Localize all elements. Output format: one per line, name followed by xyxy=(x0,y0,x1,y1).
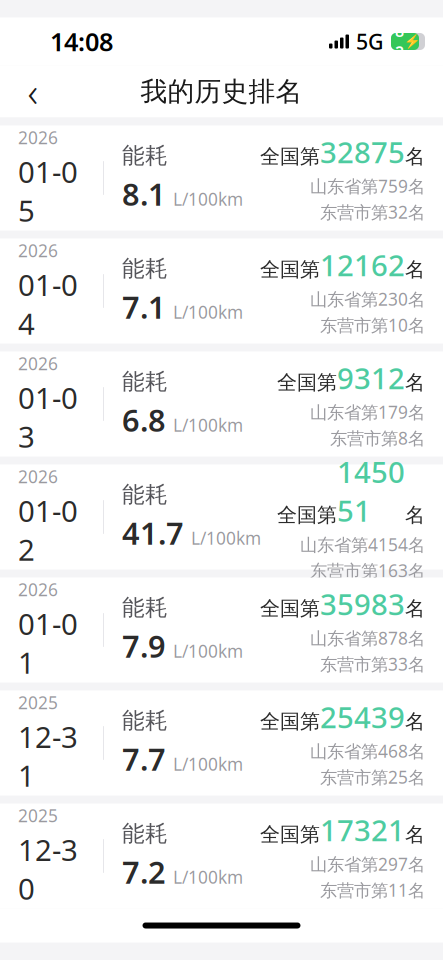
staticText: 01-04 xyxy=(18,265,78,343)
staticText: 能耗 xyxy=(122,368,168,395)
staticText: 2026 xyxy=(18,578,58,601)
staticText: 名 xyxy=(405,144,425,169)
staticText: 2026 xyxy=(18,239,58,262)
staticText: 25439 xyxy=(320,697,405,736)
staticText: 山东省第4154名 xyxy=(300,533,425,556)
staticText: L/100km xyxy=(173,414,243,437)
staticText: 全国第 xyxy=(260,596,320,621)
staticText: 东营市第163名 xyxy=(310,559,425,582)
staticText: 全国第 xyxy=(260,822,320,847)
staticText: 山东省第878名 xyxy=(310,626,425,649)
staticText: 2026 xyxy=(18,352,58,375)
staticText: L/100km xyxy=(173,753,243,776)
staticText: 名 xyxy=(405,503,425,527)
staticText: 能耗 xyxy=(122,707,168,734)
staticText: 名 xyxy=(405,257,425,282)
button[interactable]: 2026 xyxy=(0,464,443,569)
button[interactable]: 2026 xyxy=(0,577,443,682)
staticText: 32875 xyxy=(320,132,405,171)
staticText: 41.7 xyxy=(122,513,184,553)
staticText: 7.7 xyxy=(122,739,166,779)
staticText: 01-02 xyxy=(18,491,78,569)
staticText: 全国第 xyxy=(260,709,320,734)
staticText: 2025 xyxy=(18,804,58,827)
staticText: 全国第 xyxy=(260,144,320,169)
staticText: 01-03 xyxy=(18,378,78,456)
staticText: ⚡ xyxy=(404,34,421,49)
staticText: L/100km xyxy=(191,527,261,550)
staticText: L/100km xyxy=(173,188,243,211)
staticText: 山东省第230名 xyxy=(310,287,425,310)
staticText: 山东省第468名 xyxy=(310,739,425,762)
staticText: 能耗 xyxy=(122,255,168,282)
staticText: 东营市第32名 xyxy=(320,200,425,223)
staticText: 6.8 xyxy=(122,400,166,440)
staticText: 12162 xyxy=(320,245,405,284)
staticText: L/100km xyxy=(173,866,243,889)
staticText: 东营市第8名 xyxy=(330,426,425,449)
staticText: 能耗 xyxy=(122,481,168,508)
staticText: 东营市第25名 xyxy=(320,765,425,788)
button[interactable]: 2026 xyxy=(0,351,443,456)
staticText: 7.1 xyxy=(122,287,166,327)
staticText: 能耗 xyxy=(122,142,168,169)
staticText: 35983 xyxy=(320,584,405,623)
staticText: 我的历史排名 xyxy=(140,75,302,108)
staticText: 14:08 xyxy=(50,25,113,58)
staticText: 全国第 xyxy=(277,370,337,395)
staticText: 全国第 xyxy=(277,503,337,527)
button[interactable]: Back xyxy=(10,69,56,113)
staticText: 全国第 xyxy=(260,257,320,282)
staticText: 01-01 xyxy=(18,604,78,682)
staticText: 东营市第33名 xyxy=(320,652,425,675)
staticText: 名 xyxy=(405,709,425,734)
staticText: 5G xyxy=(356,27,384,56)
staticText: 7.2 xyxy=(122,852,166,892)
staticText: 2025 xyxy=(18,691,58,714)
staticText: 东营市第10名 xyxy=(320,313,425,336)
staticText: 12-31 xyxy=(18,717,78,795)
button[interactable]: 2026 xyxy=(0,125,443,230)
staticText: 17321 xyxy=(320,810,405,849)
staticText: ‹ xyxy=(27,65,38,118)
staticText: 9312 xyxy=(337,358,405,397)
staticText: 山东省第297名 xyxy=(310,852,425,875)
button[interactable]: 2025 xyxy=(0,690,443,795)
staticText: 12-30 xyxy=(18,830,78,908)
staticText: 名 xyxy=(405,370,425,395)
staticText: 东营市第11名 xyxy=(320,878,425,901)
staticText: 7.9 xyxy=(122,626,166,666)
button[interactable]: 2025 xyxy=(0,803,443,908)
staticText: L/100km xyxy=(173,640,243,663)
staticText: 01-05 xyxy=(18,152,78,230)
staticText: 名 xyxy=(405,596,425,621)
staticText: 8.1 xyxy=(122,174,166,214)
staticText: 山东省第179名 xyxy=(310,400,425,423)
staticText: 能耗 xyxy=(122,594,168,621)
staticText: 2026 xyxy=(18,126,58,149)
staticText: 能耗 xyxy=(122,820,168,847)
staticText: 82 xyxy=(395,20,404,63)
staticText: 2026 xyxy=(18,465,58,488)
button[interactable]: 2026 xyxy=(0,238,443,343)
staticText: 名 xyxy=(405,822,425,847)
staticText: 145051 xyxy=(337,452,405,530)
staticText: L/100km xyxy=(173,301,243,324)
staticText: 山东省第759名 xyxy=(310,174,425,197)
